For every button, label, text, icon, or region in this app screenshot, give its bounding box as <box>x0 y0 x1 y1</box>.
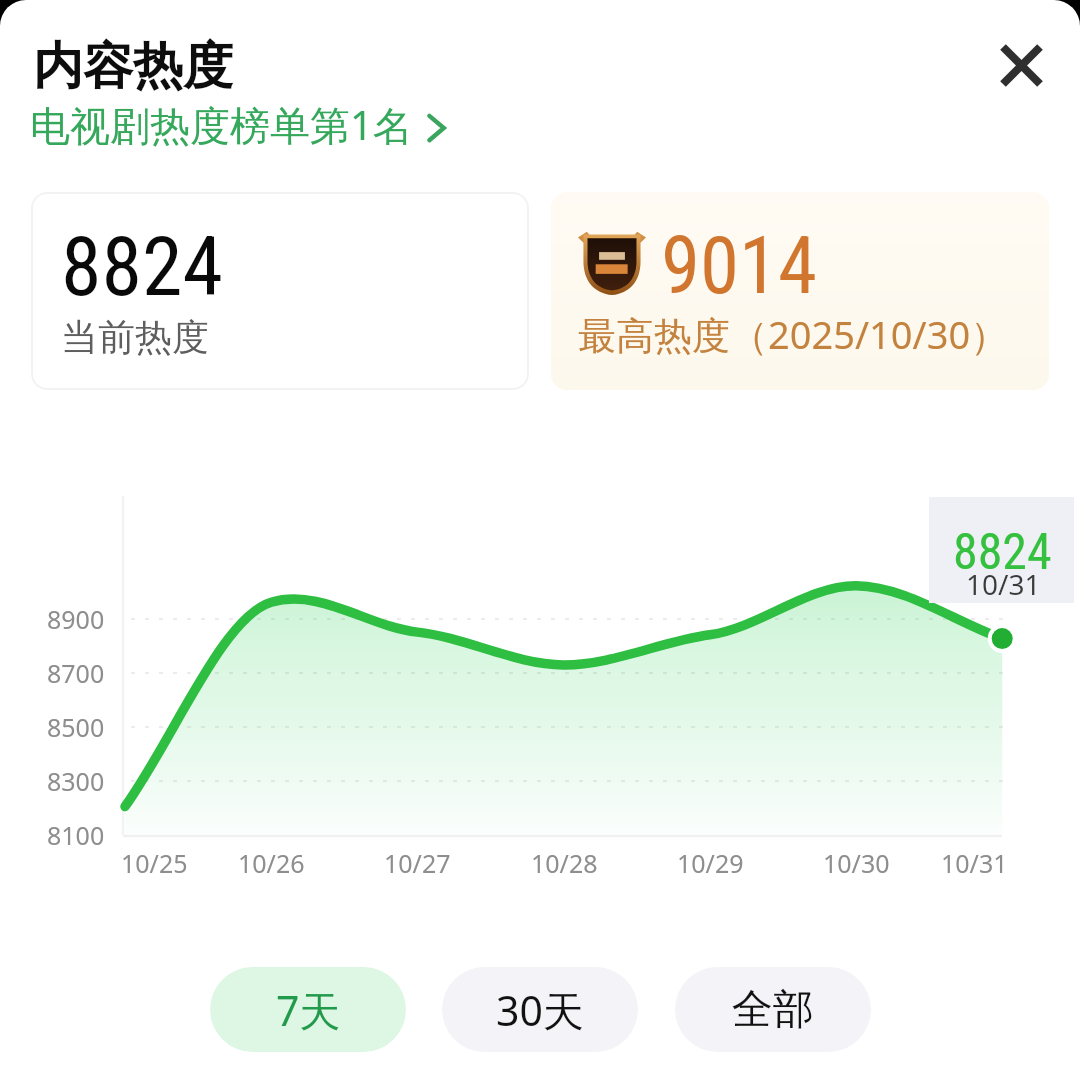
staticText: 8500 <box>47 710 105 744</box>
staticText: 8824 <box>61 219 223 315</box>
staticText: 8100 <box>47 818 105 852</box>
button[interactable]: 7天 <box>210 967 406 1052</box>
staticText: 8300 <box>47 764 105 798</box>
button[interactable]: 8824 <box>31 192 529 390</box>
staticText: 10/28 <box>531 846 598 880</box>
staticText: 8824 <box>953 523 1052 582</box>
button[interactable]: Close <box>977 21 1065 109</box>
staticText: 7天 <box>276 982 341 1038</box>
staticText: 30天 <box>496 982 584 1038</box>
staticText: 10/25 <box>121 846 188 880</box>
staticText: 内容热度 <box>33 35 233 98</box>
button[interactable]: 全部 <box>675 967 871 1052</box>
staticText: 8700 <box>47 656 105 690</box>
staticText: 10/26 <box>238 846 305 880</box>
staticText: 10/31 <box>941 846 1008 880</box>
button[interactable]: 30天 <box>442 967 638 1052</box>
staticText: 10/27 <box>384 846 451 880</box>
staticText: 当前热度 <box>61 314 209 361</box>
button[interactable]: 9014 <box>551 192 1049 390</box>
button[interactable]: 电视剧热度榜单第1名 <box>30 97 459 152</box>
staticText: 10/30 <box>823 846 890 880</box>
staticText: 最高热度（2025/10/30） <box>578 308 1009 360</box>
staticText: 9014 <box>661 220 817 313</box>
staticText: 8900 <box>47 602 105 636</box>
staticText: 全部 <box>732 984 814 1036</box>
staticText: 10/31 <box>966 565 1041 603</box>
staticText: 10/29 <box>677 846 744 880</box>
staticText: 电视剧热度榜单第1名 <box>30 97 413 152</box>
